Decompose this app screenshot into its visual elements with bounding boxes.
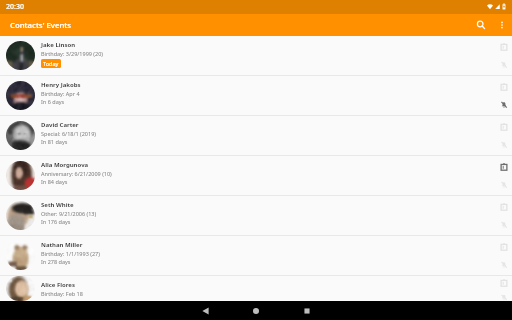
button[interactable]: Back xyxy=(192,301,218,320)
button[interactable]: Toggle notification xyxy=(497,138,510,151)
staticText: Birthday: 3/29/1999 (20) xyxy=(41,50,103,57)
button[interactable]: Search xyxy=(470,14,492,36)
button[interactable]: Event type xyxy=(497,80,510,93)
button[interactable]: Toggle notification xyxy=(497,258,510,271)
button[interactable]: Toggle notification xyxy=(497,98,510,111)
button[interactable]: Event type xyxy=(497,240,510,253)
staticText: In 81 days xyxy=(41,138,68,145)
staticText: Jake Linson xyxy=(41,41,76,49)
staticText: David Carter xyxy=(41,121,79,129)
button[interactable]: Henry Jakobs xyxy=(0,76,512,115)
button[interactable]: Recent apps xyxy=(294,301,320,320)
button[interactable]: Alice Flores xyxy=(0,276,512,301)
staticText: 20:30 xyxy=(6,2,24,12)
button[interactable]: Toggle notification xyxy=(497,218,510,231)
button[interactable]: Event type xyxy=(497,160,510,173)
staticText: Nathan Miller xyxy=(41,241,83,249)
staticText: Alla Morgunova xyxy=(41,161,89,169)
staticText: Special: 6/18/1 (2019) xyxy=(41,130,96,137)
button[interactable]: Seth White xyxy=(0,196,512,235)
staticText: In 84 days xyxy=(41,178,68,185)
button[interactable]: Nathan Miller xyxy=(0,236,512,275)
staticText: Birthday: Feb 18 xyxy=(41,290,83,297)
button[interactable]: Jake Linson xyxy=(0,36,512,75)
staticText: Henry Jakobs xyxy=(41,81,81,89)
staticText: In 278 days xyxy=(41,258,71,265)
staticText: Anniversary: 6/21/2009 (10) xyxy=(41,170,112,177)
button[interactable]: Event type xyxy=(497,120,510,133)
button[interactable]: Toggle notification xyxy=(497,294,510,301)
staticText: Other: 9/21/2006 (13) xyxy=(41,210,97,217)
staticText: In 176 days xyxy=(41,218,71,225)
button[interactable]: Event type xyxy=(497,200,510,213)
button[interactable]: Toggle notification xyxy=(497,58,510,71)
button[interactable]: Event type xyxy=(497,276,510,289)
button[interactable]: David Carter xyxy=(0,116,512,155)
button[interactable]: More options xyxy=(492,15,512,35)
staticText: Alice Flores xyxy=(41,281,75,289)
button[interactable]: Home xyxy=(243,301,269,320)
button[interactable]: Event type xyxy=(497,40,510,53)
staticText: In 6 days xyxy=(41,98,65,105)
staticText: Contacts' Events xyxy=(10,20,72,31)
staticText: Seth White xyxy=(41,201,74,209)
staticText: Birthday: 1/1/1993 (27) xyxy=(41,250,100,257)
staticText: Birthday: Apr 4 xyxy=(41,90,80,97)
staticText: Today xyxy=(43,60,59,67)
button[interactable]: Toggle notification xyxy=(497,178,510,191)
button[interactable]: Alla Morgunova xyxy=(0,156,512,195)
